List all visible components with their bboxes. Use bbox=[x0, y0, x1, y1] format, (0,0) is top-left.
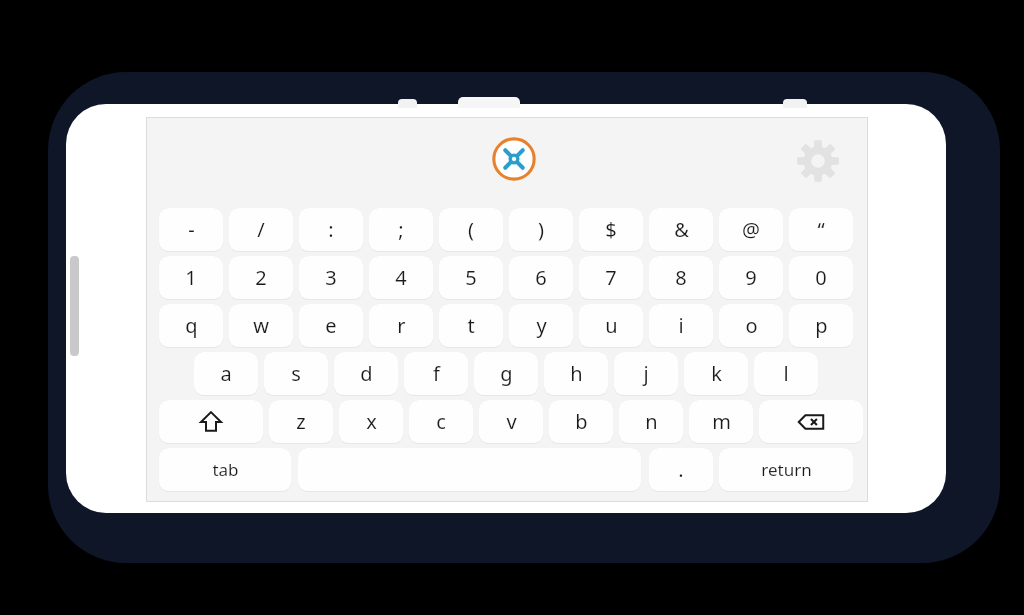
button[interactable]: v bbox=[479, 400, 543, 443]
staticText: t bbox=[467, 312, 475, 339]
staticText: w bbox=[253, 312, 269, 339]
button[interactable]: g bbox=[474, 352, 538, 395]
button[interactable]: 0 bbox=[789, 256, 853, 299]
button[interactable]: : bbox=[299, 208, 363, 251]
staticText: ; bbox=[398, 216, 404, 243]
staticText: h bbox=[570, 360, 583, 387]
button[interactable]: j bbox=[614, 352, 678, 395]
button[interactable]: o bbox=[719, 304, 783, 347]
staticText: q bbox=[185, 312, 198, 339]
button[interactable]: $ bbox=[579, 208, 643, 251]
staticText: : bbox=[328, 216, 334, 243]
button[interactable]: m bbox=[689, 400, 753, 443]
button[interactable]: 8 bbox=[649, 256, 713, 299]
staticText: 4 bbox=[395, 264, 407, 291]
staticText: & bbox=[674, 216, 689, 243]
staticText: b bbox=[575, 408, 588, 435]
staticText: 1 bbox=[185, 264, 197, 291]
button[interactable]: 4 bbox=[369, 256, 433, 299]
button[interactable]: ( bbox=[439, 208, 503, 251]
staticText: e bbox=[325, 312, 337, 339]
staticText: k bbox=[711, 360, 722, 387]
button[interactable]: s bbox=[264, 352, 328, 395]
staticText: c bbox=[436, 408, 446, 435]
staticText: 6 bbox=[535, 264, 547, 291]
button[interactable]: Home bbox=[490, 135, 538, 183]
staticText: 0 bbox=[815, 264, 827, 291]
button[interactable]: y bbox=[509, 304, 573, 347]
button[interactable]: 2 bbox=[229, 256, 293, 299]
staticText: “ bbox=[817, 216, 825, 243]
button[interactable]: n bbox=[619, 400, 683, 443]
button[interactable]: . bbox=[649, 448, 713, 491]
staticText: f bbox=[433, 360, 440, 387]
button[interactable]: b bbox=[549, 400, 613, 443]
staticText: 9 bbox=[745, 264, 757, 291]
staticText: y bbox=[536, 312, 547, 339]
button[interactable]: Backspace bbox=[759, 400, 863, 443]
button[interactable]: t bbox=[439, 304, 503, 347]
staticText: z bbox=[296, 408, 306, 435]
staticText: / bbox=[257, 216, 265, 243]
staticText: - bbox=[188, 216, 195, 243]
button[interactable]: 3 bbox=[299, 256, 363, 299]
button[interactable]: e bbox=[299, 304, 363, 347]
button[interactable]: z bbox=[269, 400, 333, 443]
button[interactable]: d bbox=[334, 352, 398, 395]
button[interactable]: q bbox=[159, 304, 223, 347]
staticText: x bbox=[366, 408, 377, 435]
button[interactable]: w bbox=[229, 304, 293, 347]
button[interactable]: ) bbox=[509, 208, 573, 251]
button[interactable]: i bbox=[649, 304, 713, 347]
staticText: a bbox=[220, 360, 232, 387]
staticText: return bbox=[761, 458, 812, 481]
button[interactable]: / bbox=[229, 208, 293, 251]
button[interactable]: h bbox=[544, 352, 608, 395]
button[interactable]: Settings bbox=[795, 138, 841, 184]
button[interactable]: ; bbox=[369, 208, 433, 251]
staticText: s bbox=[291, 360, 301, 387]
staticText: l bbox=[783, 360, 789, 387]
button[interactable]: return bbox=[719, 448, 853, 491]
staticText: $ bbox=[605, 216, 617, 243]
staticText: o bbox=[745, 312, 758, 339]
button[interactable]: 9 bbox=[719, 256, 783, 299]
staticText: 7 bbox=[605, 264, 617, 291]
staticText: n bbox=[645, 408, 658, 435]
staticText: 3 bbox=[325, 264, 337, 291]
staticText: v bbox=[506, 408, 517, 435]
button[interactable]: @ bbox=[719, 208, 783, 251]
button[interactable]: r bbox=[369, 304, 433, 347]
staticText: 8 bbox=[675, 264, 687, 291]
button[interactable]: 6 bbox=[509, 256, 573, 299]
staticText: m bbox=[712, 408, 731, 435]
staticText: . bbox=[678, 456, 684, 483]
button[interactable]: 7 bbox=[579, 256, 643, 299]
staticText: tab bbox=[212, 458, 239, 481]
staticText: ) bbox=[538, 216, 544, 243]
button[interactable]: x bbox=[339, 400, 403, 443]
button[interactable]: tab bbox=[159, 448, 291, 491]
button[interactable]: u bbox=[579, 304, 643, 347]
staticText: p bbox=[815, 312, 828, 339]
staticText: d bbox=[360, 360, 373, 387]
button[interactable]: l bbox=[754, 352, 818, 395]
staticText: i bbox=[678, 312, 684, 339]
button[interactable]: & bbox=[649, 208, 713, 251]
button[interactable]: k bbox=[684, 352, 748, 395]
staticText: ( bbox=[468, 216, 474, 243]
staticText: j bbox=[643, 360, 649, 387]
button[interactable]: Shift bbox=[159, 400, 263, 443]
button[interactable]: “ bbox=[789, 208, 853, 251]
button[interactable]: 5 bbox=[439, 256, 503, 299]
button[interactable]: f bbox=[404, 352, 468, 395]
button[interactable]: p bbox=[789, 304, 853, 347]
button[interactable]: a bbox=[194, 352, 258, 395]
staticText: 2 bbox=[255, 264, 267, 291]
button[interactable]: 1 bbox=[159, 256, 223, 299]
button[interactable]: c bbox=[409, 400, 473, 443]
staticText: 5 bbox=[465, 264, 477, 291]
button[interactable]: - bbox=[159, 208, 223, 251]
staticText: r bbox=[397, 312, 406, 339]
